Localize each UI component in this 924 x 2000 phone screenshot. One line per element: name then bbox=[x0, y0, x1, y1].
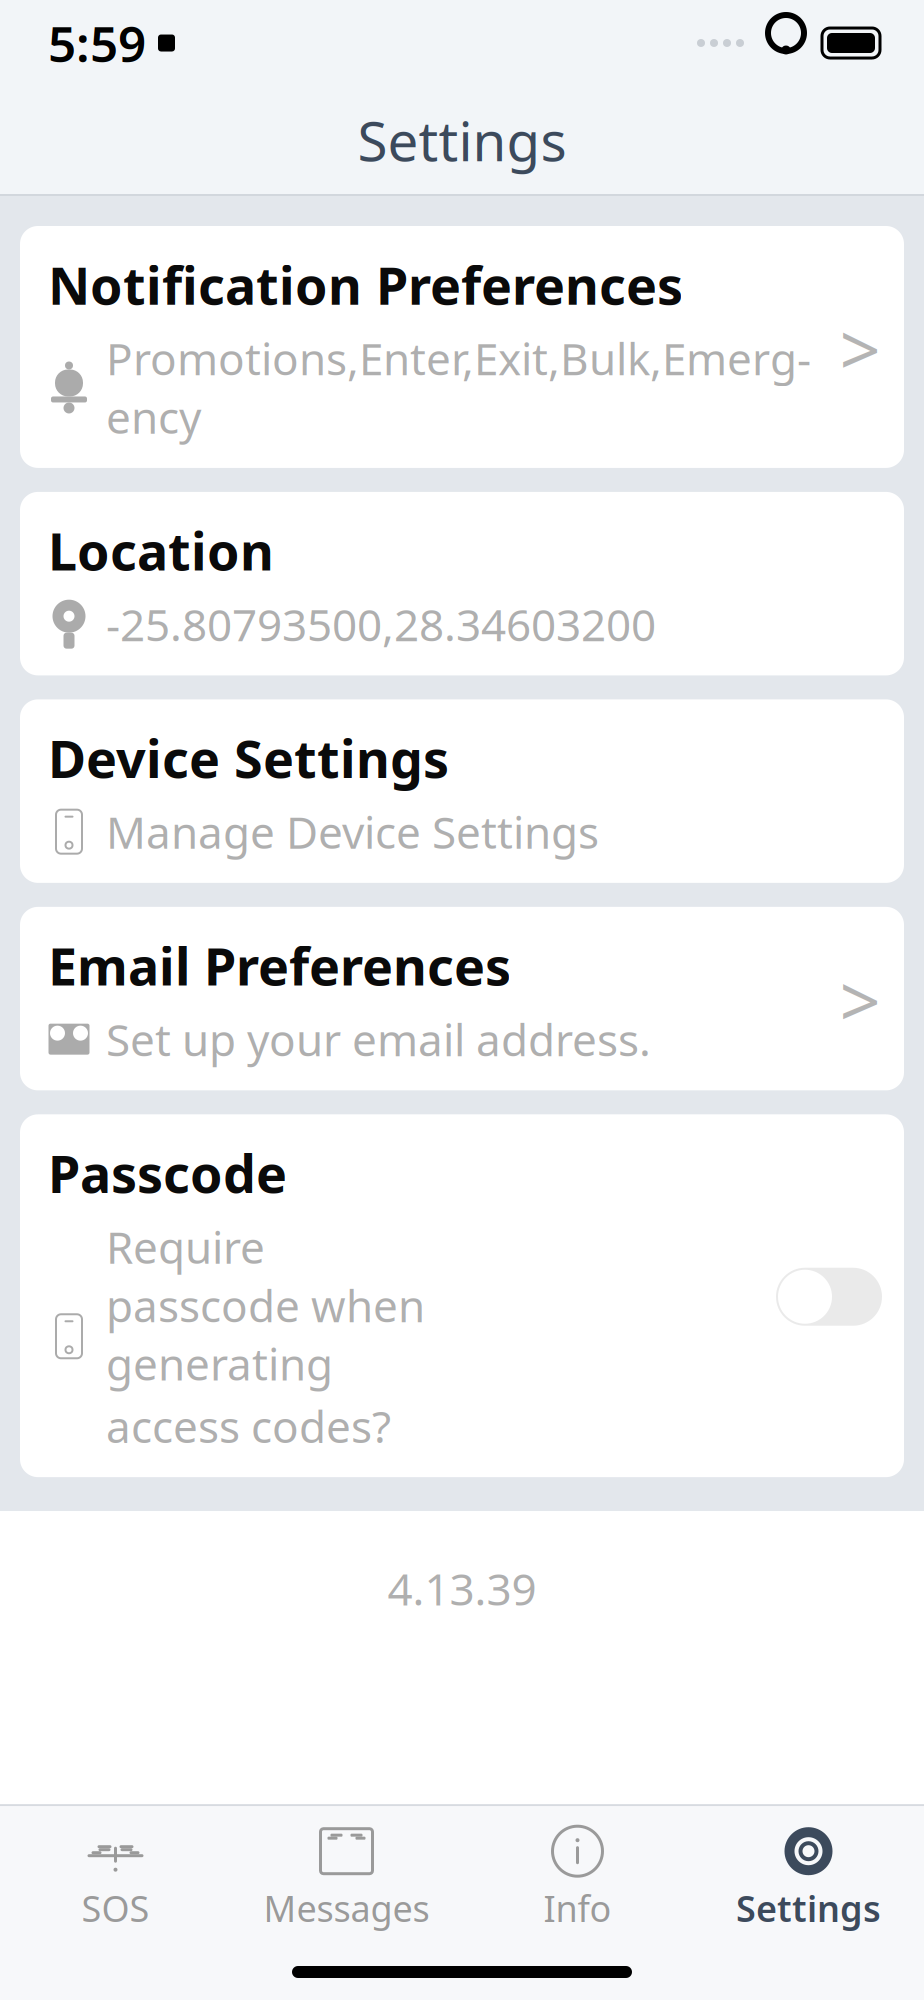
button[interactable]: Location bbox=[20, 492, 904, 675]
staticText: SOS bbox=[81, 1884, 149, 1932]
staticText: Passcode bbox=[48, 1138, 287, 1207]
staticText: Messages bbox=[263, 1884, 429, 1932]
staticText: Device Settings bbox=[48, 723, 449, 792]
button[interactable]: Messages bbox=[231, 1806, 462, 1944]
staticText: Promotions,Enter,Exit,Bulk,Emergency bbox=[106, 329, 811, 446]
staticText: Settings bbox=[736, 1884, 881, 1932]
staticText: Email Preferences bbox=[48, 931, 511, 1000]
button[interactable]: Passcode bbox=[20, 1114, 904, 1477]
button[interactable]: Notification Preferences bbox=[20, 226, 904, 468]
staticText: 5:59 bbox=[48, 10, 146, 76]
button[interactable]: Settings bbox=[693, 1806, 924, 1944]
staticText: Notification Preferences bbox=[48, 250, 683, 319]
staticText: -25.80793500,28.34603200 bbox=[106, 595, 656, 653]
staticText: Set up your email address. bbox=[106, 1010, 651, 1068]
staticText: Location bbox=[48, 516, 274, 585]
button[interactable]: Info bbox=[462, 1806, 693, 1944]
staticText: Require passcode when generating bbox=[106, 1217, 425, 1393]
staticText: Settings bbox=[357, 104, 566, 176]
staticText: > bbox=[839, 300, 880, 396]
staticText: Manage Device Settings bbox=[106, 802, 599, 861]
button[interactable]: Email Preferences bbox=[20, 907, 904, 1090]
staticText: access codes? bbox=[106, 1397, 391, 1455]
button[interactable]: SOS bbox=[0, 1806, 231, 1944]
button[interactable]: Device Settings bbox=[20, 699, 904, 883]
staticText: > bbox=[839, 952, 880, 1047]
staticText: 4.13.39 bbox=[387, 1559, 536, 1617]
staticText: Info bbox=[543, 1884, 611, 1932]
